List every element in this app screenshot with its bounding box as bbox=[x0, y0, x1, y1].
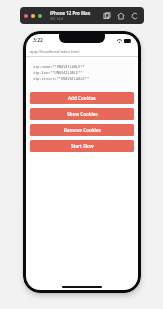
staticText: Show Cookies bbox=[67, 111, 98, 117]
button[interactable]: Add Cookies bbox=[30, 92, 134, 104]
staticText: app://localhost/index.html bbox=[30, 49, 80, 54]
button[interactable]: Screenshot bbox=[103, 12, 111, 20]
staticText: iPhone 12 Pro Max bbox=[50, 10, 91, 16]
button[interactable]: Show Cookies bbox=[30, 108, 134, 120]
staticText: iOS 14.4 bbox=[50, 16, 63, 21]
button[interactable]: Start Flow bbox=[30, 140, 134, 152]
staticText: Start Flow bbox=[71, 143, 94, 149]
staticText: 3:22 bbox=[33, 37, 43, 44]
staticText: itp-strict=**UNAVAILABLE** bbox=[33, 76, 90, 81]
staticText: Add Cookies bbox=[68, 95, 96, 101]
staticText: itp-none=**UNAVAILABLE** bbox=[33, 64, 85, 69]
staticText: itp-lax=**UNAVAILABLE** bbox=[33, 70, 83, 75]
button[interactable]: Remove Cookies bbox=[30, 124, 134, 136]
staticText: Remove Cookies bbox=[64, 127, 101, 133]
button[interactable]: Home bbox=[117, 12, 125, 20]
button[interactable]: Rotate bbox=[131, 12, 139, 20]
